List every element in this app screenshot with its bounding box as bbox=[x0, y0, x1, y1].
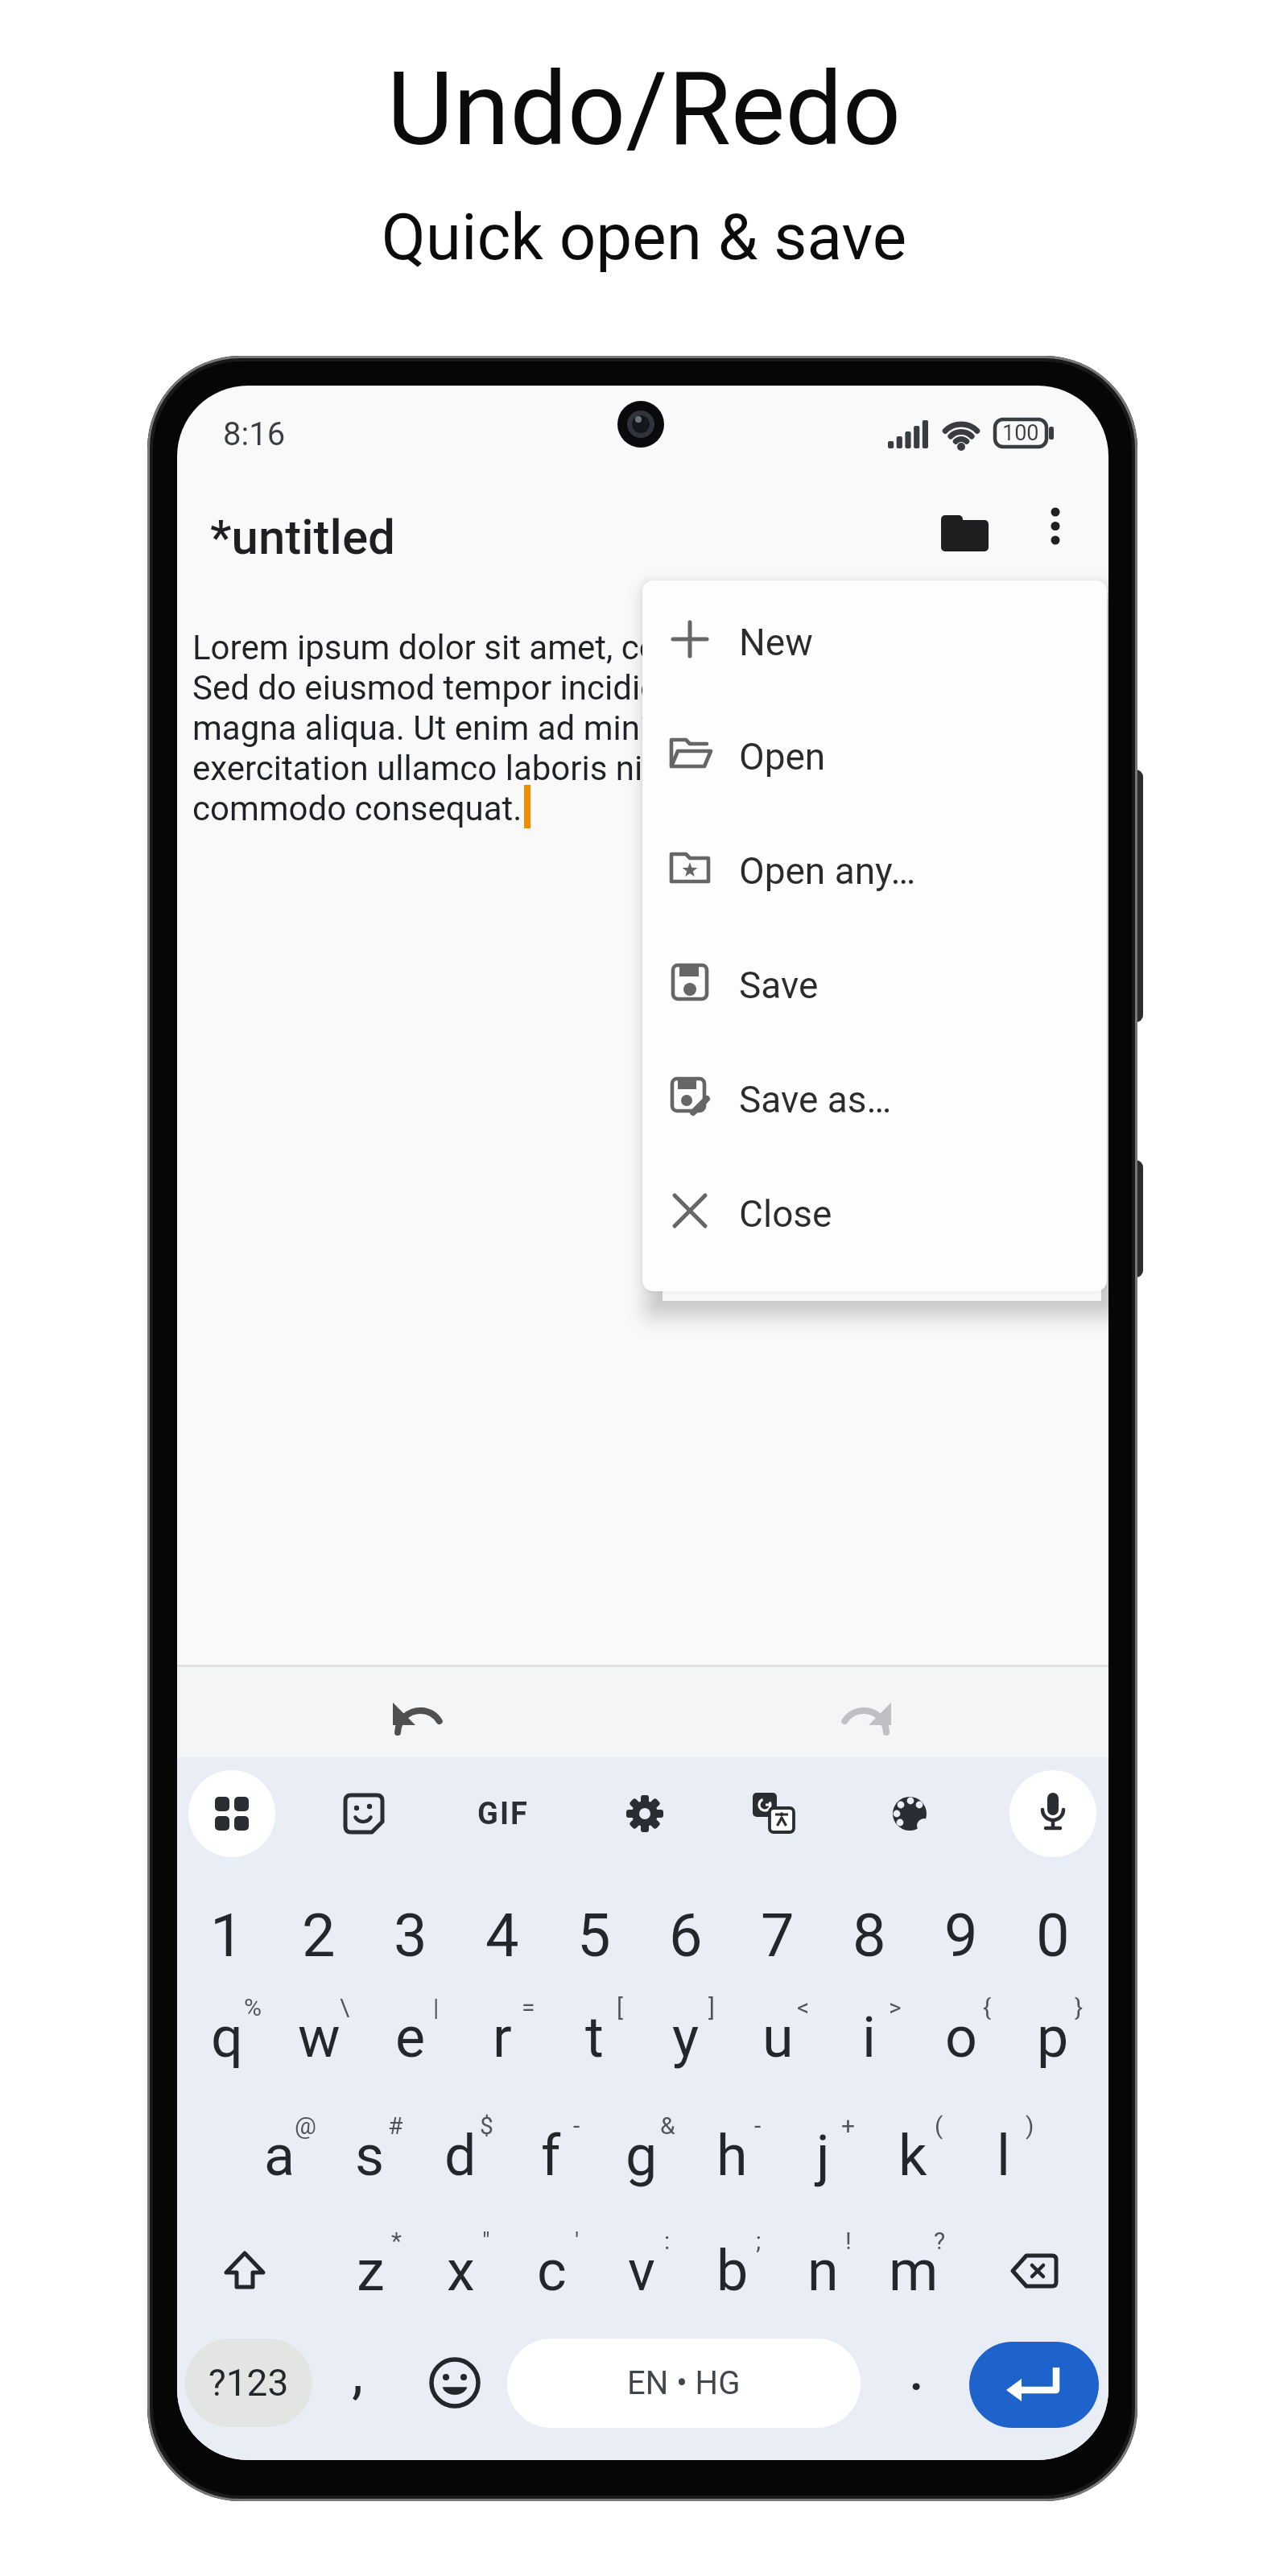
button[interactable]: d bbox=[419, 2106, 502, 2206]
button[interactable]: 3 bbox=[369, 1885, 452, 1985]
button[interactable]: j bbox=[781, 2106, 865, 2206]
button[interactable] bbox=[1023, 499, 1088, 568]
button[interactable]: , bbox=[321, 2339, 402, 2427]
staticText: d bbox=[444, 2123, 477, 2189]
staticText: r bbox=[493, 2004, 512, 2070]
staticText: j bbox=[816, 2123, 830, 2189]
button[interactable] bbox=[1009, 1769, 1097, 1858]
button[interactable]: r bbox=[460, 1988, 544, 2087]
button[interactable]: p bbox=[1011, 1988, 1095, 2087]
button[interactable]: Close bbox=[642, 1154, 1107, 1268]
button[interactable]: s bbox=[328, 2106, 411, 2206]
button[interactable]: 6 bbox=[644, 1885, 728, 1985]
button[interactable]: 4 bbox=[460, 1885, 544, 1985]
staticText: *untitled bbox=[210, 509, 396, 565]
staticText: t bbox=[585, 2004, 604, 2070]
button[interactable]: v bbox=[600, 2221, 683, 2321]
staticText: Lorem ipsum dolor sit amet, consectetur bbox=[192, 628, 800, 667]
button[interactable]: a bbox=[237, 2106, 321, 2206]
button[interactable]: 7 bbox=[736, 1885, 819, 1985]
button[interactable]: q bbox=[185, 1988, 269, 2087]
button[interactable]: 8 bbox=[828, 1885, 911, 1985]
staticText: ? bbox=[934, 2227, 946, 2255]
button[interactable]: Open bbox=[642, 696, 1107, 811]
staticText: - bbox=[573, 2112, 580, 2140]
button[interactable]: b bbox=[691, 2221, 774, 2321]
button[interactable]: c bbox=[510, 2221, 593, 2321]
staticText: q bbox=[211, 2004, 243, 2070]
button[interactable]: New bbox=[642, 582, 1107, 696]
staticText: ! bbox=[845, 2227, 852, 2255]
staticText: 8:16 bbox=[223, 415, 286, 453]
button[interactable]: 9 bbox=[919, 1885, 1003, 1985]
staticText: < bbox=[797, 1993, 810, 2021]
button[interactable]: k bbox=[871, 2106, 955, 2206]
button[interactable] bbox=[986, 2223, 1083, 2319]
button[interactable]: 1 bbox=[185, 1885, 269, 1985]
staticText: Undo/Redo bbox=[0, 49, 1288, 169]
staticText: exercitation ullamco laboris nisi ut ali… bbox=[192, 749, 815, 788]
button[interactable]: ?123 bbox=[185, 2339, 312, 2427]
button[interactable]: u bbox=[736, 1988, 819, 2087]
button[interactable]: . bbox=[875, 2339, 956, 2427]
button[interactable] bbox=[925, 499, 1005, 568]
staticText: p bbox=[1037, 2004, 1069, 2070]
staticText: 100 bbox=[1002, 420, 1039, 446]
button[interactable] bbox=[188, 1769, 276, 1858]
button[interactable] bbox=[865, 1769, 954, 1858]
button[interactable]: z bbox=[328, 2221, 412, 2321]
button[interactable]: o bbox=[919, 1988, 1003, 2087]
staticText: g bbox=[625, 2123, 658, 2189]
staticText: Close bbox=[739, 1192, 832, 1236]
staticText: . bbox=[908, 2330, 926, 2406]
staticText: v bbox=[628, 2238, 655, 2304]
button[interactable]: t bbox=[552, 1988, 636, 2087]
button[interactable] bbox=[729, 1769, 817, 1858]
button[interactable]: f bbox=[509, 2106, 592, 2206]
button[interactable]: GIF bbox=[459, 1769, 547, 1858]
staticText: b bbox=[716, 2238, 749, 2304]
button[interactable]: x bbox=[419, 2221, 502, 2321]
staticText: ] bbox=[708, 1993, 715, 2021]
button[interactable] bbox=[411, 2339, 499, 2427]
button[interactable]: 5 bbox=[552, 1885, 636, 1985]
button[interactable] bbox=[601, 1769, 689, 1858]
button[interactable]: e bbox=[369, 1988, 452, 2087]
button[interactable] bbox=[814, 1690, 919, 1738]
staticText: 4 bbox=[485, 1901, 519, 1971]
staticText: | bbox=[433, 1993, 440, 2021]
button[interactable] bbox=[320, 1769, 408, 1858]
staticText: = bbox=[522, 1993, 535, 2021]
staticText: 2 bbox=[302, 1901, 336, 1971]
staticText: [ bbox=[617, 1993, 623, 2021]
button[interactable]: 2 bbox=[277, 1885, 361, 1985]
staticText: k bbox=[898, 2123, 927, 2189]
button[interactable]: Open any… bbox=[642, 811, 1107, 925]
staticText: 7 bbox=[761, 1901, 795, 1971]
button[interactable]: Save bbox=[642, 925, 1107, 1039]
button[interactable] bbox=[365, 1690, 470, 1738]
staticText: i bbox=[862, 2004, 877, 2070]
staticText: 1 bbox=[210, 1901, 244, 1971]
button[interactable] bbox=[196, 2223, 293, 2319]
button[interactable]: EN • HG bbox=[507, 2339, 861, 2428]
staticText: l bbox=[997, 2123, 1011, 2189]
staticText: 3 bbox=[394, 1901, 427, 1971]
staticText: Sed do eiusmod tempor incididunt ut bbox=[192, 668, 746, 708]
button[interactable]: h bbox=[690, 2106, 774, 2206]
button[interactable]: y bbox=[644, 1988, 728, 2087]
button[interactable]: i bbox=[828, 1988, 911, 2087]
button[interactable]: Save as… bbox=[642, 1039, 1107, 1154]
staticText: ?123 bbox=[208, 2361, 289, 2405]
button[interactable]: 0 bbox=[1011, 1885, 1095, 1985]
staticText: \ bbox=[340, 1993, 350, 2021]
button[interactable]: w bbox=[277, 1988, 361, 2087]
button[interactable]: m bbox=[872, 2221, 956, 2321]
staticText: h bbox=[716, 2123, 748, 2189]
button[interactable]: n bbox=[781, 2221, 865, 2321]
button[interactable]: l bbox=[962, 2106, 1046, 2206]
button[interactable] bbox=[969, 2342, 1099, 2428]
button[interactable]: g bbox=[600, 2106, 683, 2206]
staticText: m bbox=[889, 2238, 939, 2304]
staticText: * bbox=[391, 2227, 402, 2255]
